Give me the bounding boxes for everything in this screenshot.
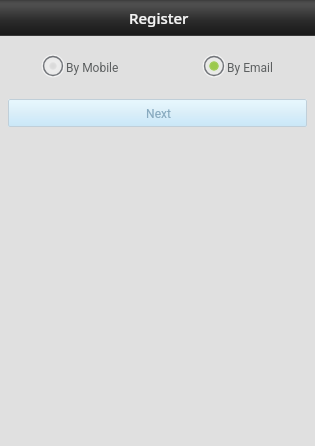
staticText: By Mobile [66,61,119,75]
staticText: Next [146,107,171,121]
button[interactable]: By Mobile [42,55,119,77]
button[interactable]: Next [8,99,307,127]
staticText: By Email [227,61,273,75]
button[interactable]: By Email [203,55,273,77]
staticText: Register [129,8,189,28]
